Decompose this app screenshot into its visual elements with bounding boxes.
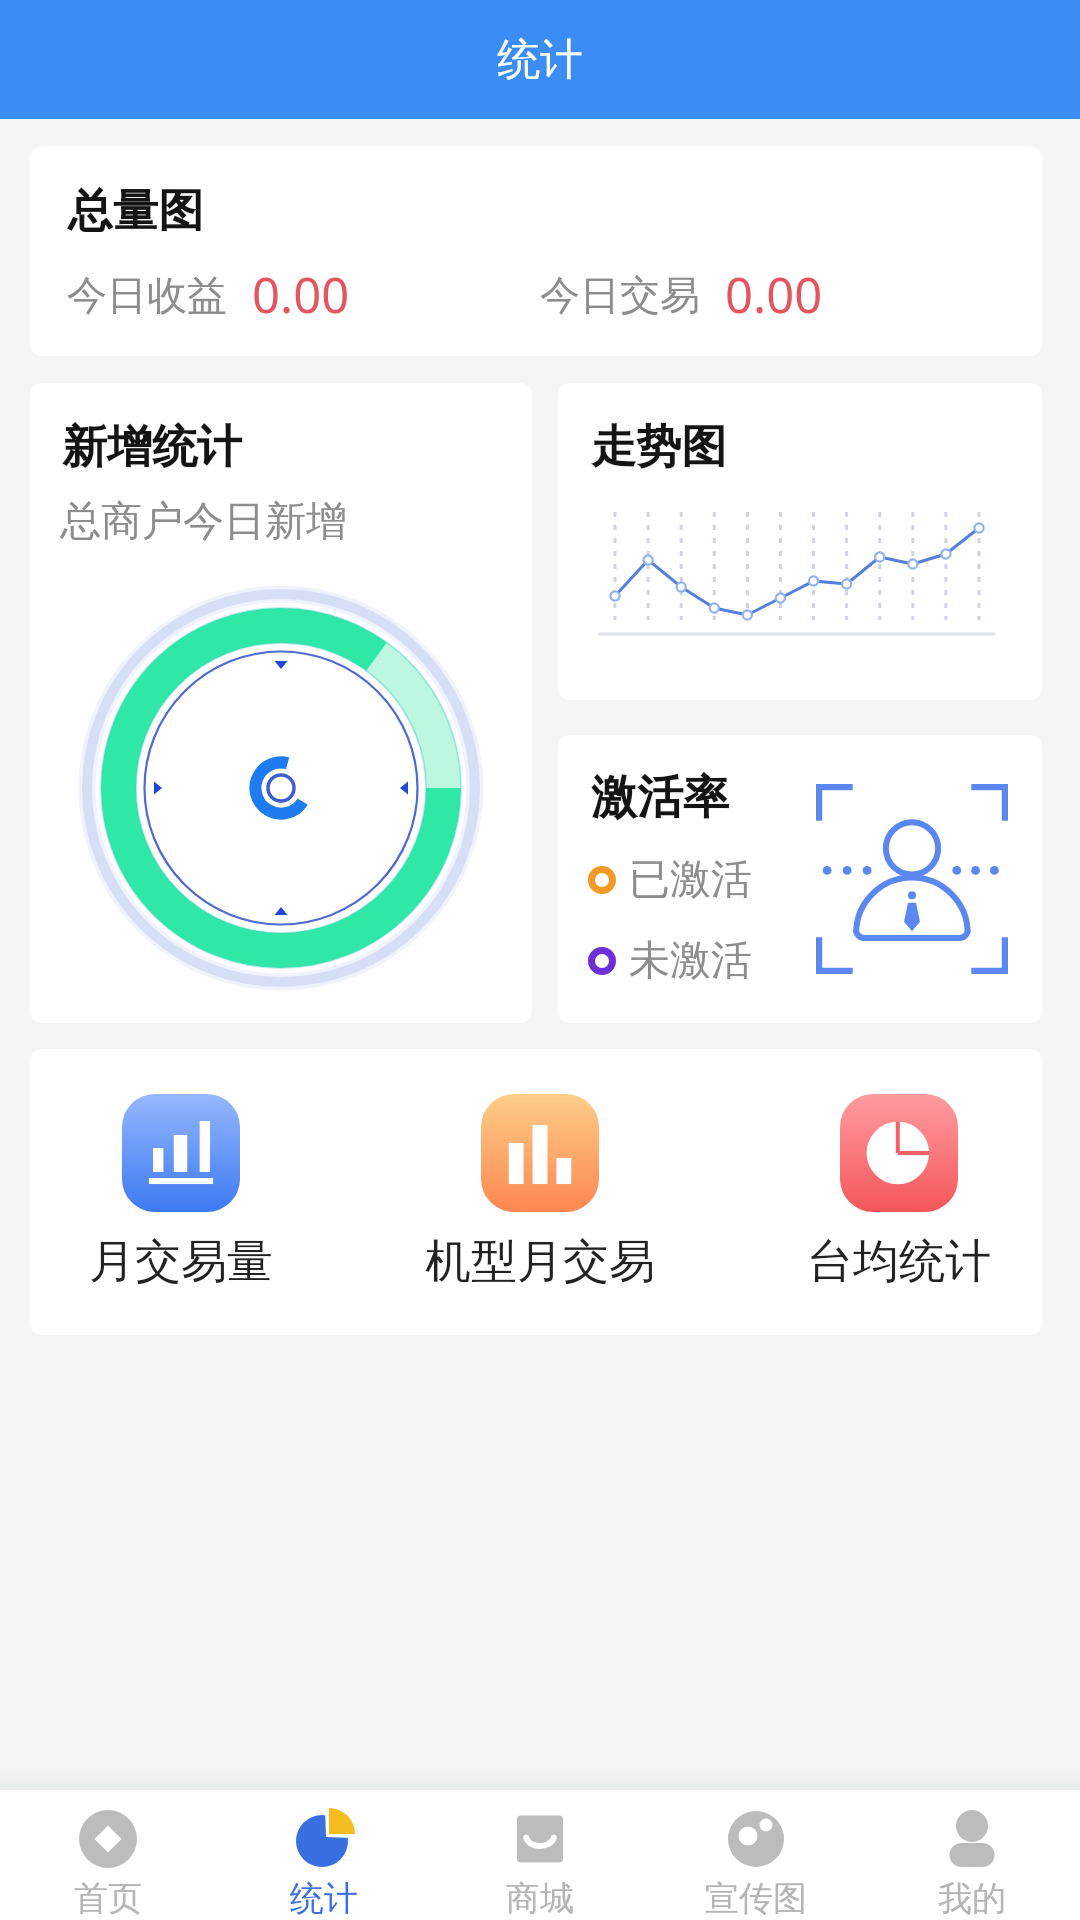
staticText: 宣传图 [705, 1877, 807, 1920]
button[interactable]: 台均统计 [807, 1094, 991, 1291]
staticText: 总量图 [68, 183, 203, 240]
staticText: 0.00 [725, 261, 823, 328]
button[interactable]: 机型月交易 [425, 1094, 655, 1291]
staticText: 我的 [938, 1877, 1006, 1920]
staticText: 机型月交易 [425, 1233, 655, 1291]
staticText: 走势图 [591, 419, 726, 476]
staticText: 台均统计 [807, 1233, 991, 1291]
button[interactable]: 我的 [864, 1790, 1080, 1920]
staticText: 今日交易 [540, 270, 700, 320]
staticText: 0.00 [252, 261, 350, 328]
staticText: 激活率 [591, 769, 729, 827]
button[interactable]: 商城 [432, 1790, 648, 1920]
button[interactable]: 新增统计 [30, 383, 532, 1023]
button[interactable]: 统计 [216, 1790, 432, 1920]
button[interactable]: 总量图 [30, 146, 1042, 356]
button[interactable]: 走势图 [558, 383, 1042, 700]
staticText: 总商户今日新增 [60, 496, 347, 548]
button[interactable]: 首页 [0, 1790, 216, 1920]
staticText: 已激活 [629, 854, 752, 906]
staticText: 统计 [497, 33, 583, 87]
button[interactable]: 激活率 [558, 735, 1042, 1023]
staticText: 月交易量 [89, 1233, 273, 1291]
staticText: 新增统计 [62, 419, 242, 476]
staticText: 商城 [506, 1877, 574, 1920]
staticText: 首页 [74, 1877, 142, 1920]
button[interactable]: 宣传图 [648, 1790, 864, 1920]
staticText: 统计 [290, 1877, 358, 1920]
staticText: 未激活 [629, 935, 752, 987]
button[interactable]: 月交易量 [89, 1094, 273, 1291]
staticText: 今日收益 [67, 270, 227, 320]
